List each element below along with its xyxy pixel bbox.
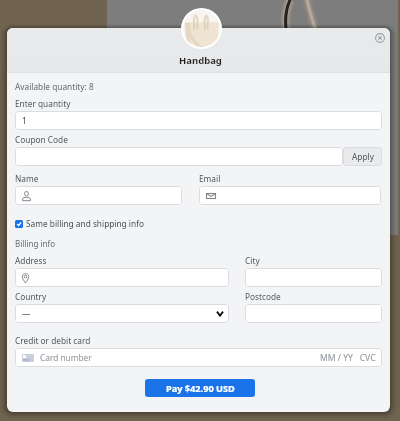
staticText: Country [15, 291, 47, 302]
staticText: Same billing and shipping info [26, 218, 145, 229]
staticText: Handbag [179, 54, 222, 67]
staticText: Coupon Code [15, 134, 68, 145]
staticText: Pay $42.90 USD [166, 382, 235, 395]
staticText: Postcode [245, 291, 281, 302]
staticText: Name [15, 173, 39, 184]
staticText: Billing info [15, 238, 55, 249]
button[interactable] [15, 186, 182, 205]
staticText: MM / YY CVC [320, 352, 376, 364]
button[interactable]: Apply [343, 147, 382, 166]
button[interactable]: Pay $42.90 USD [145, 379, 255, 397]
staticText: Apply [352, 151, 374, 162]
staticText: Available quantity: 8 [15, 81, 94, 92]
button[interactable]: Card number [15, 348, 382, 367]
button[interactable] [199, 186, 381, 205]
staticText: Enter quantity [15, 98, 71, 109]
staticText: — [22, 308, 31, 319]
button[interactable]: Close [372, 30, 388, 46]
staticText: Card number [40, 352, 92, 363]
button[interactable] [245, 304, 382, 323]
button[interactable] [245, 268, 382, 287]
staticText: Email [199, 173, 221, 184]
button[interactable]: — [15, 304, 229, 323]
staticText: 1 [22, 115, 27, 126]
staticText: City [245, 255, 260, 266]
staticText: Credit or debit card [15, 335, 91, 346]
button[interactable] [15, 268, 229, 287]
button[interactable]: Same billing and shipping info [15, 218, 145, 229]
button[interactable]: 1 [15, 111, 382, 130]
button[interactable] [15, 147, 343, 166]
staticText: Address [15, 255, 47, 266]
